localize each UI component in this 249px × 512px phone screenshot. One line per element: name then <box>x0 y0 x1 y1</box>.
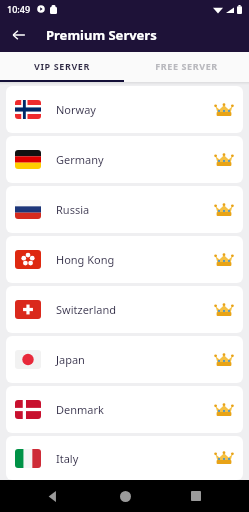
button[interactable]: Norway <box>6 86 243 133</box>
staticText: Japan <box>56 352 85 367</box>
button[interactable]: Switzerland <box>6 286 243 333</box>
staticText: FREE SERVER <box>155 60 218 72</box>
button[interactable]: Russia <box>6 186 243 233</box>
staticText: VIP SERVER <box>34 60 90 72</box>
button[interactable]: Hong Kong <box>6 236 243 283</box>
staticText: Italy <box>56 451 79 466</box>
button[interactable]: Japan <box>6 336 243 383</box>
button[interactable]: FREE SERVER <box>124 52 249 80</box>
button[interactable]: Recent apps <box>178 480 214 512</box>
button[interactable]: Denmark <box>6 386 243 433</box>
button[interactable]: Germany <box>6 136 243 183</box>
button[interactable]: Home <box>107 480 143 512</box>
staticText: Denmark <box>56 402 104 417</box>
staticText: Premium Servers <box>46 26 157 44</box>
button[interactable]: Back <box>7 23 31 47</box>
staticText: Switzerland <box>56 302 116 317</box>
staticText: Germany <box>56 152 104 167</box>
button[interactable]: Italy <box>6 436 243 480</box>
staticText: Russia <box>56 202 90 217</box>
button[interactable]: VIP SERVER <box>0 52 124 80</box>
button[interactable]: Back <box>35 480 71 512</box>
staticText: Hong Kong <box>56 252 115 267</box>
staticText: Norway <box>56 102 96 117</box>
staticText: 10:49 <box>7 3 31 15</box>
